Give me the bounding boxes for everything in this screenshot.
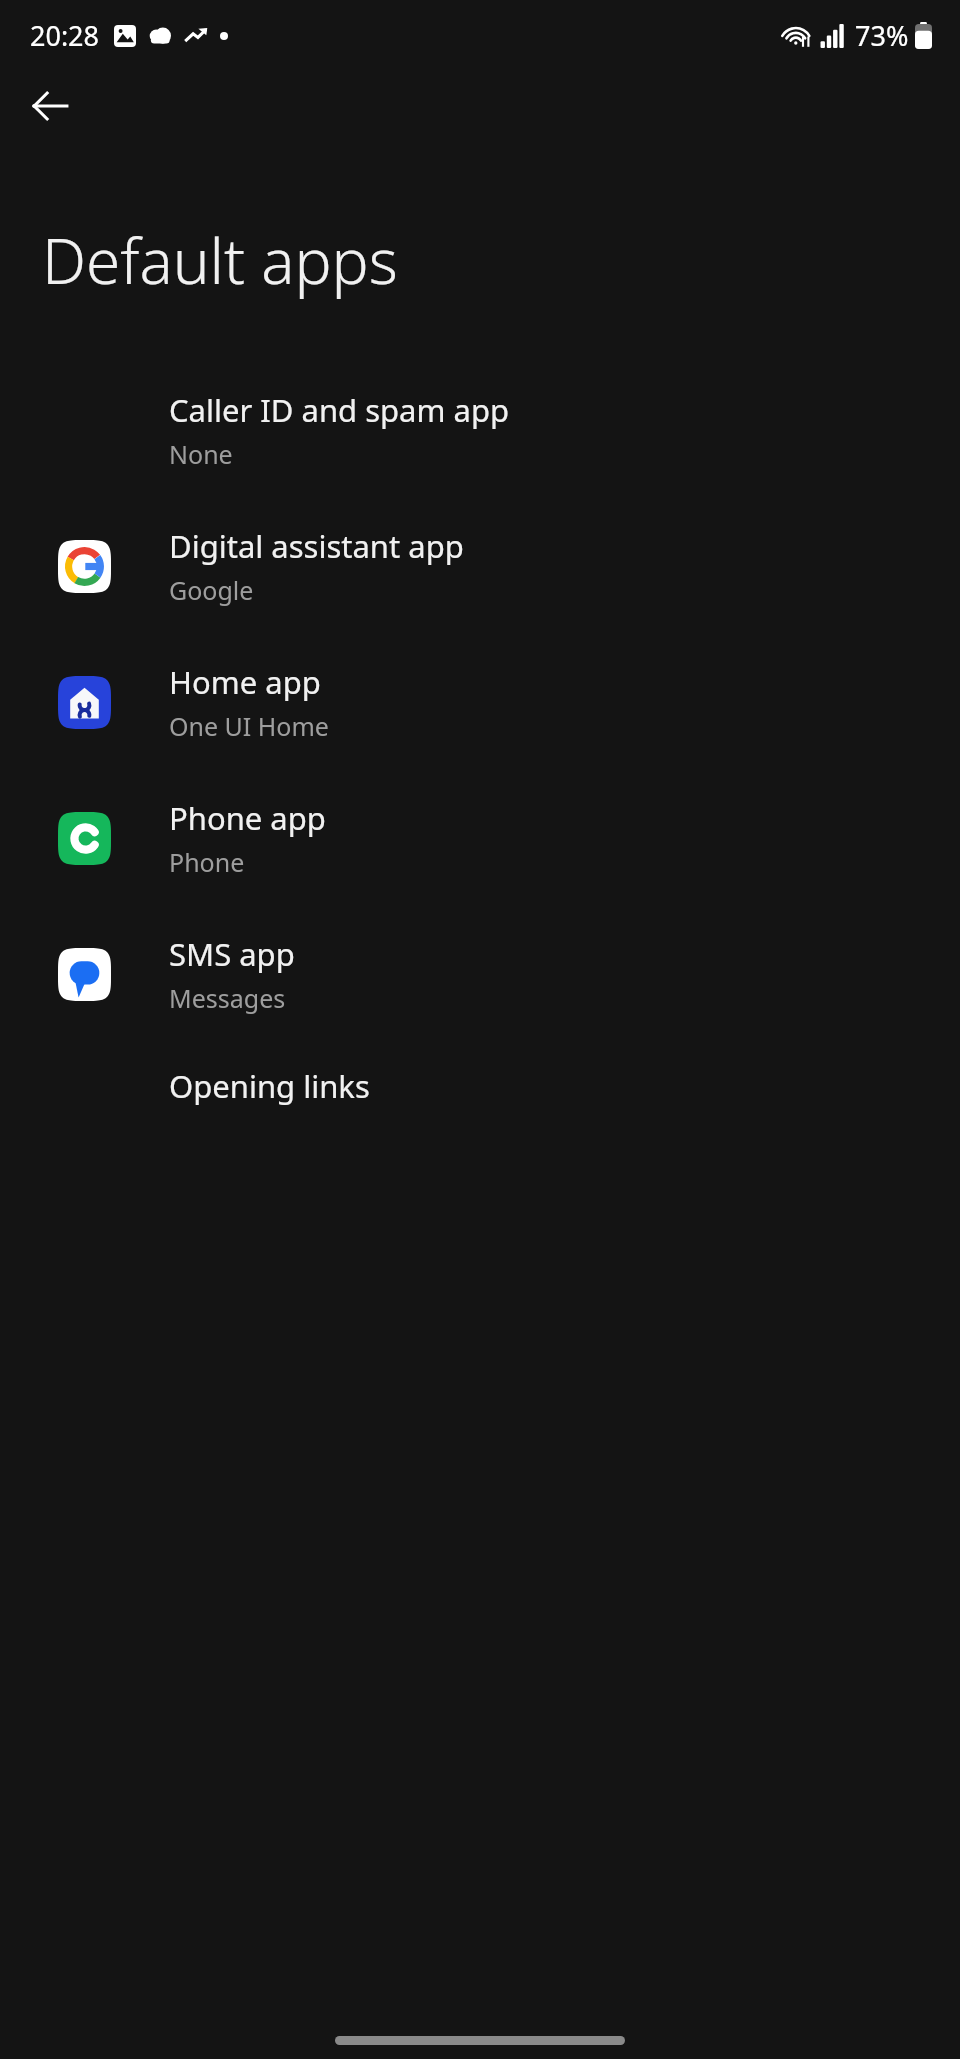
staticText: Caller ID and spam app (169, 389, 510, 431)
staticText: Digital assistant app (169, 525, 464, 567)
staticText: Messages (169, 981, 286, 1015)
staticText: Phone app (169, 797, 326, 839)
staticText: One UI Home (169, 709, 329, 743)
button[interactable]: Home app (0, 634, 960, 770)
button[interactable]: Caller ID and spam app (0, 362, 960, 498)
button[interactable]: Back (14, 70, 86, 142)
staticText: Opening links (169, 1065, 370, 1107)
staticText: Phone (169, 845, 245, 879)
staticText: SMS app (169, 933, 295, 975)
button[interactable]: Phone app (0, 770, 960, 906)
staticText: None (169, 437, 233, 471)
button[interactable]: SMS app (0, 906, 960, 1042)
staticText: 20:28 (30, 17, 100, 54)
button[interactable]: Opening links (0, 1042, 960, 1130)
staticText: Google (169, 573, 254, 607)
staticText: 73% (855, 17, 909, 54)
staticText: Default apps (42, 218, 398, 302)
button[interactable]: Digital assistant app (0, 498, 960, 634)
staticText: Home app (169, 661, 321, 703)
